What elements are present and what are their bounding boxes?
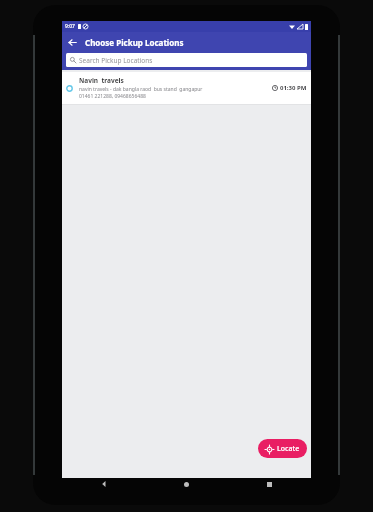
button[interactable]: Navigate up [62, 32, 83, 53]
staticText: Locate [277, 444, 300, 454]
button[interactable]: Back [62, 478, 145, 490]
staticText: Search Pickup Locations [79, 56, 153, 65]
button[interactable]: Recent apps [228, 478, 311, 490]
button[interactable]: Search Pickup Locations [66, 53, 307, 67]
staticText: Choose Pickup Locations [85, 37, 184, 48]
staticText: Navin travels [79, 76, 124, 85]
button[interactable]: Home [145, 478, 228, 490]
button[interactable]: Navin travels [62, 72, 311, 104]
staticText: 01461 221288, 09468656488 [79, 93, 146, 100]
button[interactable]: Locate [258, 439, 307, 458]
staticText: navin travels - dak bangla raod bus stan… [79, 86, 203, 93]
staticText: 01:30 PM [280, 84, 307, 92]
staticText: 9:07 [65, 23, 75, 30]
